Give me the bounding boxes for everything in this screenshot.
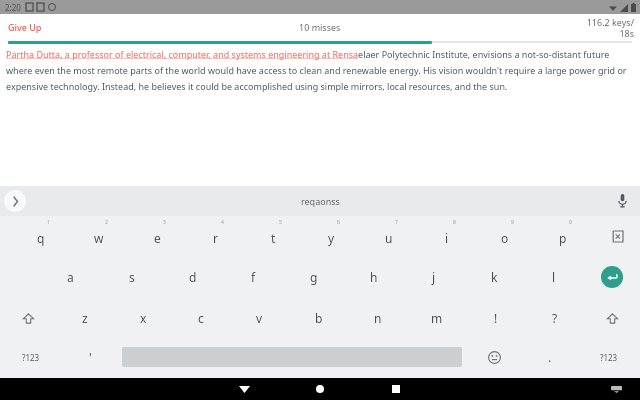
button[interactable]: Recents <box>379 378 413 400</box>
staticText: ' <box>89 349 92 365</box>
button[interactable]: d <box>162 256 223 298</box>
button[interactable]: x <box>114 298 172 338</box>
button[interactable]: 5 <box>244 216 302 256</box>
button[interactable]: Give Up <box>0 17 50 37</box>
button[interactable]: 9 <box>476 216 534 256</box>
button[interactable]: h <box>344 256 404 298</box>
button[interactable]: Home <box>303 378 337 400</box>
staticText: 3 <box>163 219 166 226</box>
staticText: j <box>432 269 436 285</box>
staticText: 4 <box>221 219 224 226</box>
staticText: k <box>491 269 498 285</box>
staticText: ?123 <box>600 352 618 363</box>
staticText: 9 <box>511 219 514 226</box>
button[interactable]: 7 <box>360 216 418 256</box>
button[interactable]: Enter <box>584 256 640 298</box>
staticText: . <box>548 349 552 365</box>
staticText: 10 misses <box>299 21 341 33</box>
button[interactable]: 2 <box>70 216 128 256</box>
staticText: s <box>129 269 135 285</box>
staticText: 2:20 <box>5 2 21 13</box>
button[interactable]: c <box>172 298 230 338</box>
staticText: 2 <box>105 219 108 226</box>
staticText: d <box>189 269 197 285</box>
staticText: 5 <box>279 219 282 226</box>
button[interactable]: 0 <box>534 216 592 256</box>
button[interactable]: k <box>464 256 524 298</box>
button[interactable]: 8 <box>418 216 476 256</box>
button[interactable]: 4 <box>186 216 244 256</box>
button[interactable]: s <box>101 256 162 298</box>
staticText: ?123 <box>22 352 40 363</box>
staticText: x <box>140 310 147 326</box>
staticText: 0 <box>569 219 572 226</box>
staticText: reqaonss <box>301 195 340 207</box>
staticText: ! <box>494 310 498 326</box>
button[interactable]: g <box>284 256 344 298</box>
button[interactable]: Shift <box>0 298 56 338</box>
button[interactable]: 3 <box>128 216 186 256</box>
button[interactable]: ?123 <box>578 338 640 376</box>
button[interactable]: a <box>40 256 101 298</box>
staticText: y <box>328 230 335 246</box>
staticText: m <box>431 310 443 326</box>
button[interactable]: More suggestions <box>4 190 26 212</box>
button[interactable]: ? <box>525 298 584 338</box>
staticText: 6 <box>337 219 340 226</box>
button[interactable]: v <box>230 298 289 338</box>
staticText: Partha Dutta, a professor of electrical,… <box>6 48 632 92</box>
staticText: p <box>559 230 567 246</box>
button[interactable]: f <box>223 256 284 298</box>
button[interactable]: 1 <box>12 216 70 256</box>
button[interactable]: Voice input <box>612 191 632 211</box>
staticText: Give Up <box>8 21 42 33</box>
button[interactable]: . <box>522 338 578 376</box>
button[interactable]: Backspace <box>592 216 640 256</box>
staticText: v <box>256 310 263 326</box>
button[interactable]: z <box>56 298 114 338</box>
staticText: ? <box>552 310 558 326</box>
button[interactable]: reqaonss <box>291 191 350 211</box>
staticText: r <box>213 230 218 246</box>
button[interactable]: b <box>289 298 348 338</box>
staticText: u <box>385 230 393 246</box>
button[interactable]: 6 <box>302 216 360 256</box>
staticText: h <box>370 269 378 285</box>
staticText: i <box>445 230 449 246</box>
staticText: e <box>154 230 161 246</box>
staticText: 8 <box>453 219 456 226</box>
staticText: 116.2 keys/ 18s <box>586 16 634 39</box>
button[interactable]: Hide keyboard <box>606 379 626 399</box>
button[interactable]: l <box>524 256 584 298</box>
button[interactable]: Emoji <box>466 338 522 376</box>
staticText: b <box>315 310 323 326</box>
button[interactable]: j <box>404 256 464 298</box>
staticText: w <box>94 230 104 246</box>
staticText: f <box>251 269 256 285</box>
button[interactable]: n <box>348 298 407 338</box>
staticText: q <box>37 230 45 246</box>
button[interactable]: m <box>407 298 466 338</box>
staticText: o <box>501 230 509 246</box>
staticText: 7 <box>395 219 398 226</box>
staticText: 1 <box>47 219 50 226</box>
button[interactable]: ! <box>466 298 525 338</box>
button[interactable]: ' <box>62 338 118 376</box>
staticText: a <box>67 269 74 285</box>
button[interactable]: ?123 <box>0 338 62 376</box>
staticText: g <box>310 269 318 285</box>
staticText: c <box>198 310 204 326</box>
button[interactable]: Back <box>227 378 261 400</box>
staticText: t <box>271 230 276 246</box>
staticText: z <box>82 310 88 326</box>
staticText: n <box>374 310 382 326</box>
button[interactable]: Shift <box>584 298 640 338</box>
staticText: l <box>552 269 556 285</box>
